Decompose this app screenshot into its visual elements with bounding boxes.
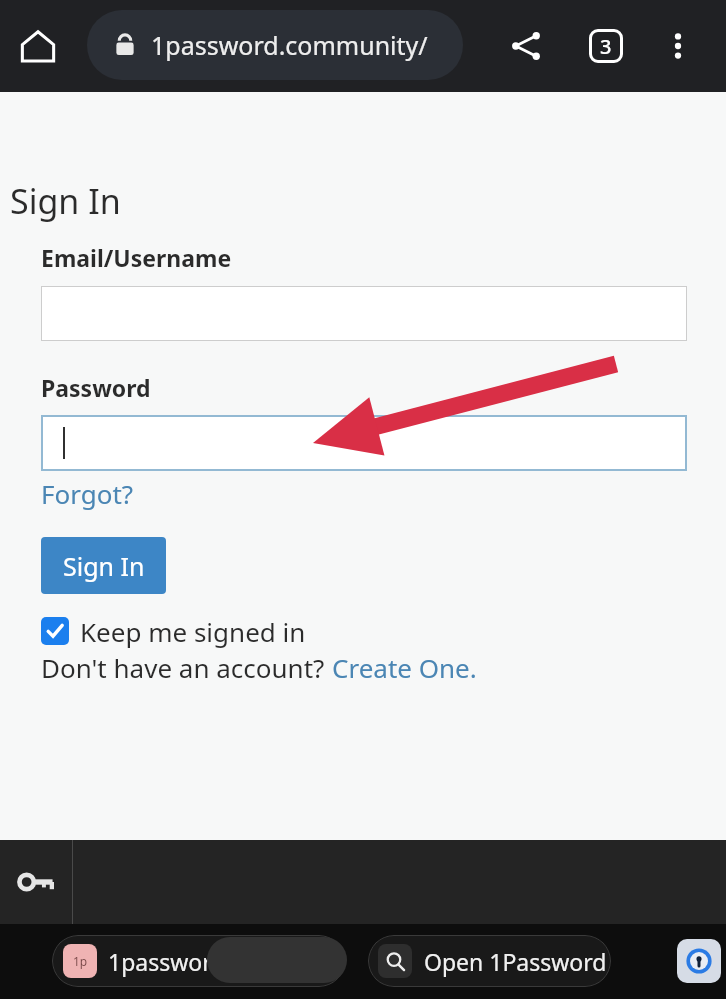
staticText: Sign In (10, 178, 121, 224)
staticText: Forgot? (41, 476, 134, 511)
button[interactable]: 1password.community/ (87, 10, 463, 80)
staticText: 3 (600, 33, 612, 60)
button[interactable]: Create One. (332, 650, 477, 685)
staticText: Email/Username (41, 242, 232, 273)
button[interactable]: Email or username field (41, 286, 687, 341)
button[interactable]: Password field (41, 415, 687, 471)
staticText: Create One. (332, 650, 477, 685)
button[interactable]: Sign In (41, 537, 166, 594)
button[interactable]: Open 1Password (368, 935, 611, 987)
button[interactable]: Tabs, 3 open (574, 14, 638, 78)
button[interactable]: Share (494, 14, 558, 78)
staticText: Password (41, 372, 151, 403)
button[interactable]: Forgot? (39, 476, 136, 511)
staticText: Open 1Password (424, 946, 607, 977)
staticText: 1password (108, 946, 226, 977)
button[interactable]: 1Password (677, 939, 721, 983)
button[interactable]: Keep me signed in (41, 614, 306, 648)
staticText: Sign In (63, 549, 145, 583)
staticText: 1password.community/ (151, 28, 428, 62)
button[interactable]: More options (646, 14, 710, 78)
staticText: 1p (73, 953, 88, 969)
staticText: Don't have an account? (41, 650, 332, 685)
button[interactable]: Passwords (4, 850, 68, 914)
button[interactable]: Home (6, 14, 70, 78)
staticText: Keep me signed in (80, 614, 306, 648)
button[interactable]: 1p (52, 935, 345, 987)
